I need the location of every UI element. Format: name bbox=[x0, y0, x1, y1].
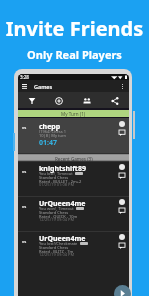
button[interactable]: Chat bbox=[119, 130, 125, 136]
button[interactable]: More options bbox=[116, 80, 128, 92]
staticText: vs bbox=[22, 125, 27, 131]
button[interactable]: Filter bbox=[18, 92, 45, 110]
button[interactable]: Share bbox=[101, 92, 129, 110]
staticText: You lost!, Timeout bbox=[39, 171, 73, 176]
staticText: 01:47 bbox=[39, 138, 57, 148]
button[interactable]: Chat bbox=[119, 208, 125, 214]
staticText: vs bbox=[22, 204, 27, 210]
button[interactable]: Opponent profile bbox=[119, 164, 125, 170]
button[interactable]: vs bbox=[18, 196, 129, 231]
button[interactable]: vs bbox=[18, 118, 129, 153]
button[interactable]: Play video bbox=[114, 285, 131, 296]
staticText: Standard Chess bbox=[39, 210, 69, 215]
staticText: 3:28 bbox=[20, 74, 29, 80]
staticText: Only Real Players bbox=[0, 47, 149, 62]
staticText: You won!, Timeout bbox=[39, 206, 74, 211]
staticText: knightshift89 bbox=[39, 164, 86, 174]
staticText: 12/25/19 09:04 PM bbox=[39, 217, 75, 222]
staticText: Invite Friends bbox=[0, 15, 149, 42]
staticText: (1964) Chess 1 bbox=[39, 129, 67, 134]
button[interactable]: vs bbox=[18, 161, 129, 196]
staticText: chepp bbox=[39, 122, 61, 132]
staticText: Rated - QUICK - 10m bbox=[39, 214, 78, 219]
staticText: You lost!/Checkmate bbox=[39, 241, 78, 246]
button[interactable]: Friends bbox=[73, 92, 101, 110]
staticText: Rated - BLITZ - 7m bbox=[39, 249, 74, 254]
button[interactable]: Menu bbox=[18, 80, 30, 92]
staticText: 10|8| My turn bbox=[39, 133, 67, 138]
staticText: 01/25/19 01:08 PM bbox=[39, 182, 75, 187]
staticText: Rated - BULLET - 2m+2 bbox=[39, 179, 82, 184]
staticText: Games bbox=[34, 83, 53, 90]
staticText: 12/25/19 09:04 PM bbox=[39, 252, 75, 257]
button[interactable]: Chat bbox=[119, 173, 125, 179]
button[interactable]: New game bbox=[45, 92, 73, 110]
button[interactable]: Chat bbox=[119, 243, 125, 249]
staticText: UrQueen4me bbox=[39, 199, 86, 209]
staticText: My Turn (1) bbox=[61, 111, 86, 117]
button[interactable]: Opponent profile bbox=[119, 121, 125, 127]
staticText: vs bbox=[22, 239, 27, 245]
staticText: Standard Chess bbox=[39, 175, 69, 180]
staticText: Recent Games (3) bbox=[55, 156, 93, 162]
staticText: Standard Chess bbox=[39, 245, 69, 250]
button[interactable]: Opponent profile bbox=[119, 234, 125, 240]
staticText: UrQueen4me bbox=[39, 234, 86, 244]
button[interactable]: Opponent profile bbox=[119, 199, 125, 205]
staticText: vs bbox=[22, 169, 27, 175]
button[interactable]: vs bbox=[18, 231, 129, 266]
